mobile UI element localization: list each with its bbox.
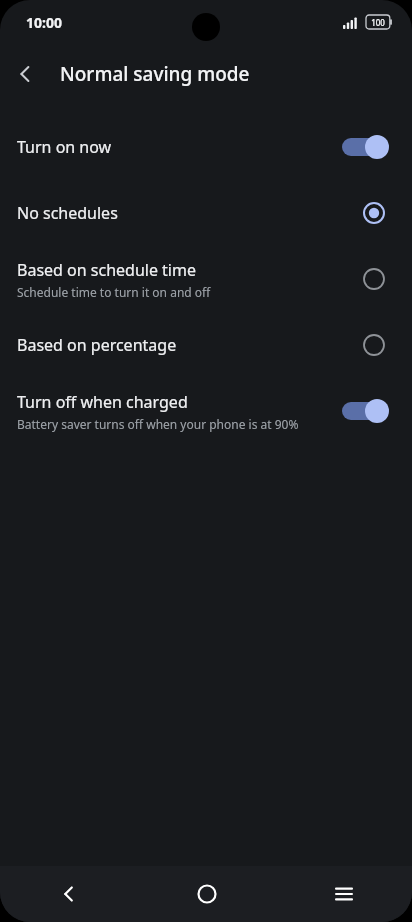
staticText: No schedules xyxy=(17,202,118,224)
button[interactable]: Back xyxy=(45,870,93,918)
button[interactable]: Toggle xyxy=(342,396,394,426)
staticText: Schedule time to turn it on and off xyxy=(17,284,211,300)
button[interactable]: Toggle xyxy=(342,132,394,162)
staticText: Based on percentage xyxy=(17,334,177,356)
staticText: Turn off when charged xyxy=(17,391,188,413)
staticText: 100 xyxy=(371,17,385,28)
button[interactable]: Based on percentage xyxy=(0,312,412,378)
staticText: Turn on now xyxy=(17,136,112,158)
button[interactable]: Home xyxy=(183,870,231,918)
button[interactable]: Option xyxy=(354,259,394,299)
staticText: Normal saving mode xyxy=(60,61,250,87)
button[interactable]: No schedules xyxy=(0,180,412,246)
button[interactable]: Turn off when charged xyxy=(0,378,412,444)
button[interactable]: Option xyxy=(354,325,394,365)
button[interactable]: Recent apps xyxy=(320,870,368,918)
button[interactable]: Based on schedule time xyxy=(0,246,412,312)
staticText: Based on schedule time xyxy=(17,259,196,281)
staticText: Battery saver turns off when your phone … xyxy=(17,416,299,432)
button[interactable]: Back xyxy=(0,48,52,100)
button[interactable]: Turn on now xyxy=(0,114,412,180)
staticText: 10:00 xyxy=(26,13,62,32)
button[interactable]: Selected option xyxy=(354,193,394,233)
